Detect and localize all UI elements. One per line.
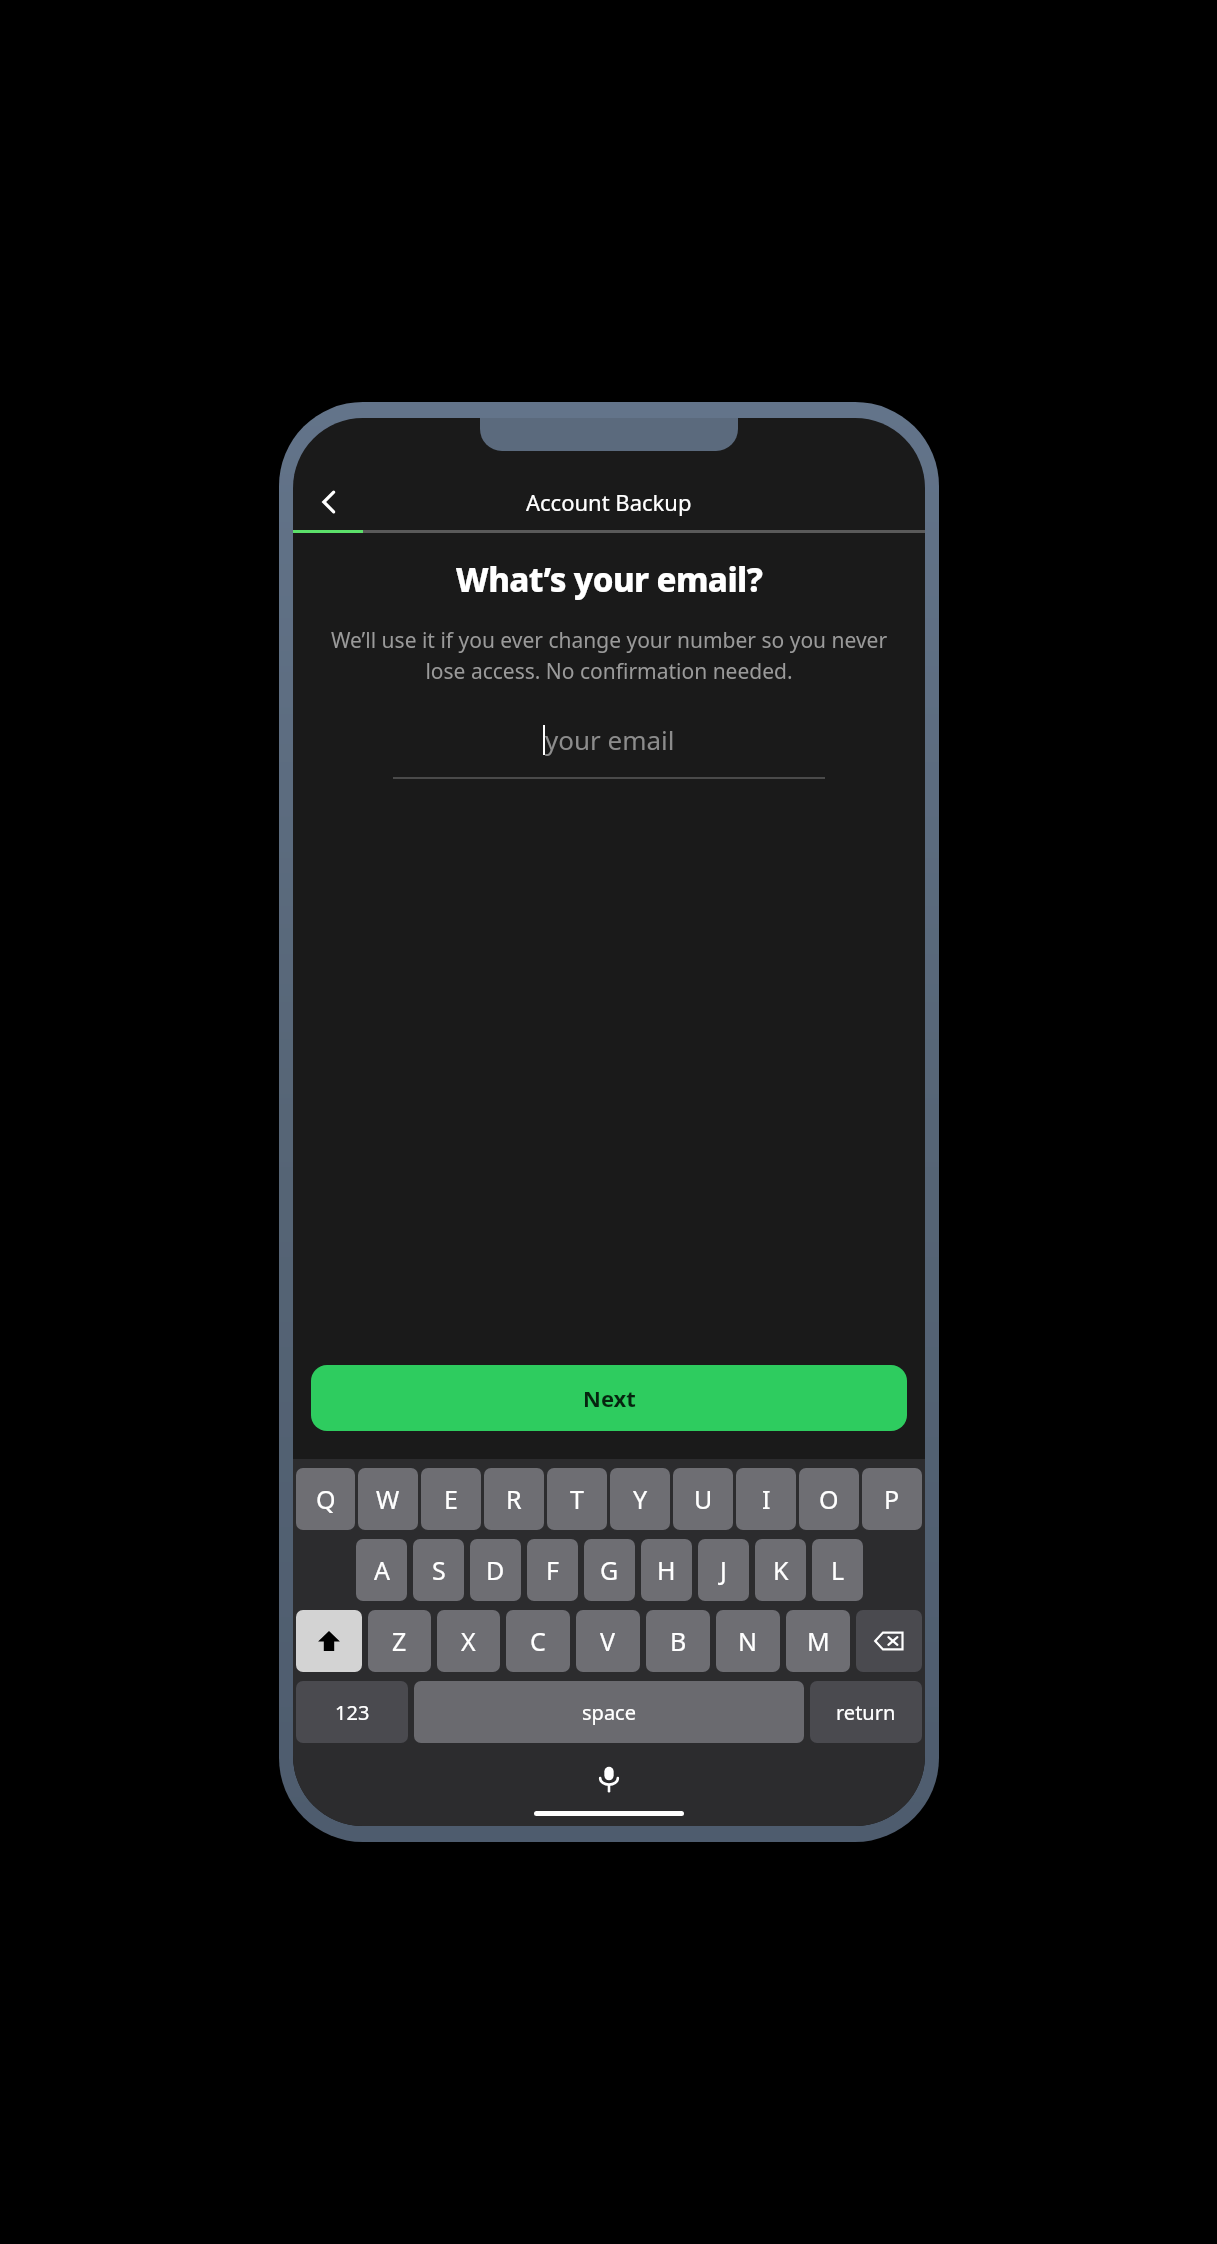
button[interactable]: H: [641, 1539, 692, 1601]
staticText: Next: [583, 1383, 636, 1413]
button[interactable]: T: [547, 1468, 607, 1530]
staticText: O: [819, 1482, 839, 1516]
staticText: X: [461, 1624, 476, 1658]
button[interactable]: N: [716, 1610, 780, 1672]
button[interactable]: U: [673, 1468, 733, 1530]
button[interactable]: 123: [296, 1681, 408, 1743]
staticText: W: [376, 1482, 400, 1516]
staticText: return: [836, 1699, 896, 1726]
staticText: A: [374, 1553, 390, 1587]
staticText: Z: [392, 1624, 407, 1658]
staticText: U: [694, 1482, 713, 1516]
staticText: 123: [335, 1699, 370, 1726]
button[interactable]: L: [812, 1539, 863, 1601]
button[interactable]: A: [356, 1539, 407, 1601]
button[interactable]: S: [413, 1539, 464, 1601]
staticText: P: [884, 1482, 900, 1516]
button[interactable]: C: [506, 1610, 570, 1672]
staticText: B: [670, 1624, 687, 1658]
staticText: Account Backup: [526, 487, 692, 517]
button[interactable]: R: [484, 1468, 544, 1530]
button[interactable]: X: [437, 1610, 500, 1672]
button[interactable]: Dictate: [585, 1755, 633, 1803]
button[interactable]: E: [421, 1468, 481, 1530]
button[interactable]: Y: [610, 1468, 670, 1530]
button[interactable]: O: [799, 1468, 859, 1530]
button[interactable]: Z: [368, 1610, 431, 1672]
button[interactable]: G: [584, 1539, 635, 1601]
button[interactable]: F: [527, 1539, 578, 1601]
staticText: L: [831, 1553, 845, 1587]
staticText: Y: [633, 1482, 648, 1516]
button[interactable]: Back: [303, 476, 355, 528]
staticText: V: [600, 1624, 616, 1658]
button[interactable]: W: [358, 1468, 418, 1530]
staticText: We’ll use it if you ever change your num…: [327, 626, 891, 685]
staticText: I: [762, 1482, 771, 1516]
staticText: R: [506, 1482, 522, 1516]
button[interactable]: B: [646, 1610, 710, 1672]
button[interactable]: space: [414, 1681, 804, 1743]
staticText: D: [486, 1553, 505, 1587]
staticText: space: [582, 1699, 636, 1726]
button[interactable]: your email: [393, 715, 825, 763]
staticText: T: [570, 1482, 584, 1516]
button[interactable]: Next: [311, 1365, 907, 1431]
button[interactable]: J: [698, 1539, 749, 1601]
staticText: F: [546, 1553, 559, 1587]
button[interactable]: Backspace: [856, 1610, 922, 1672]
button[interactable]: P: [862, 1468, 922, 1530]
staticText: M: [807, 1624, 830, 1658]
staticText: H: [657, 1553, 676, 1587]
staticText: C: [530, 1624, 546, 1658]
button[interactable]: K: [755, 1539, 806, 1601]
button[interactable]: V: [576, 1610, 640, 1672]
staticText: N: [738, 1624, 758, 1658]
staticText: G: [600, 1553, 619, 1587]
staticText: E: [444, 1482, 458, 1516]
staticText: S: [432, 1553, 446, 1587]
staticText: What’s your email?: [315, 557, 903, 602]
staticText: your email: [545, 722, 675, 757]
button[interactable]: D: [470, 1539, 521, 1601]
button[interactable]: return: [810, 1681, 922, 1743]
button[interactable]: M: [786, 1610, 850, 1672]
button[interactable]: Q: [296, 1468, 355, 1530]
button[interactable]: I: [736, 1468, 796, 1530]
staticText: K: [773, 1553, 789, 1587]
staticText: J: [720, 1553, 727, 1587]
button[interactable]: Shift: [296, 1610, 362, 1672]
staticText: Q: [316, 1482, 336, 1516]
